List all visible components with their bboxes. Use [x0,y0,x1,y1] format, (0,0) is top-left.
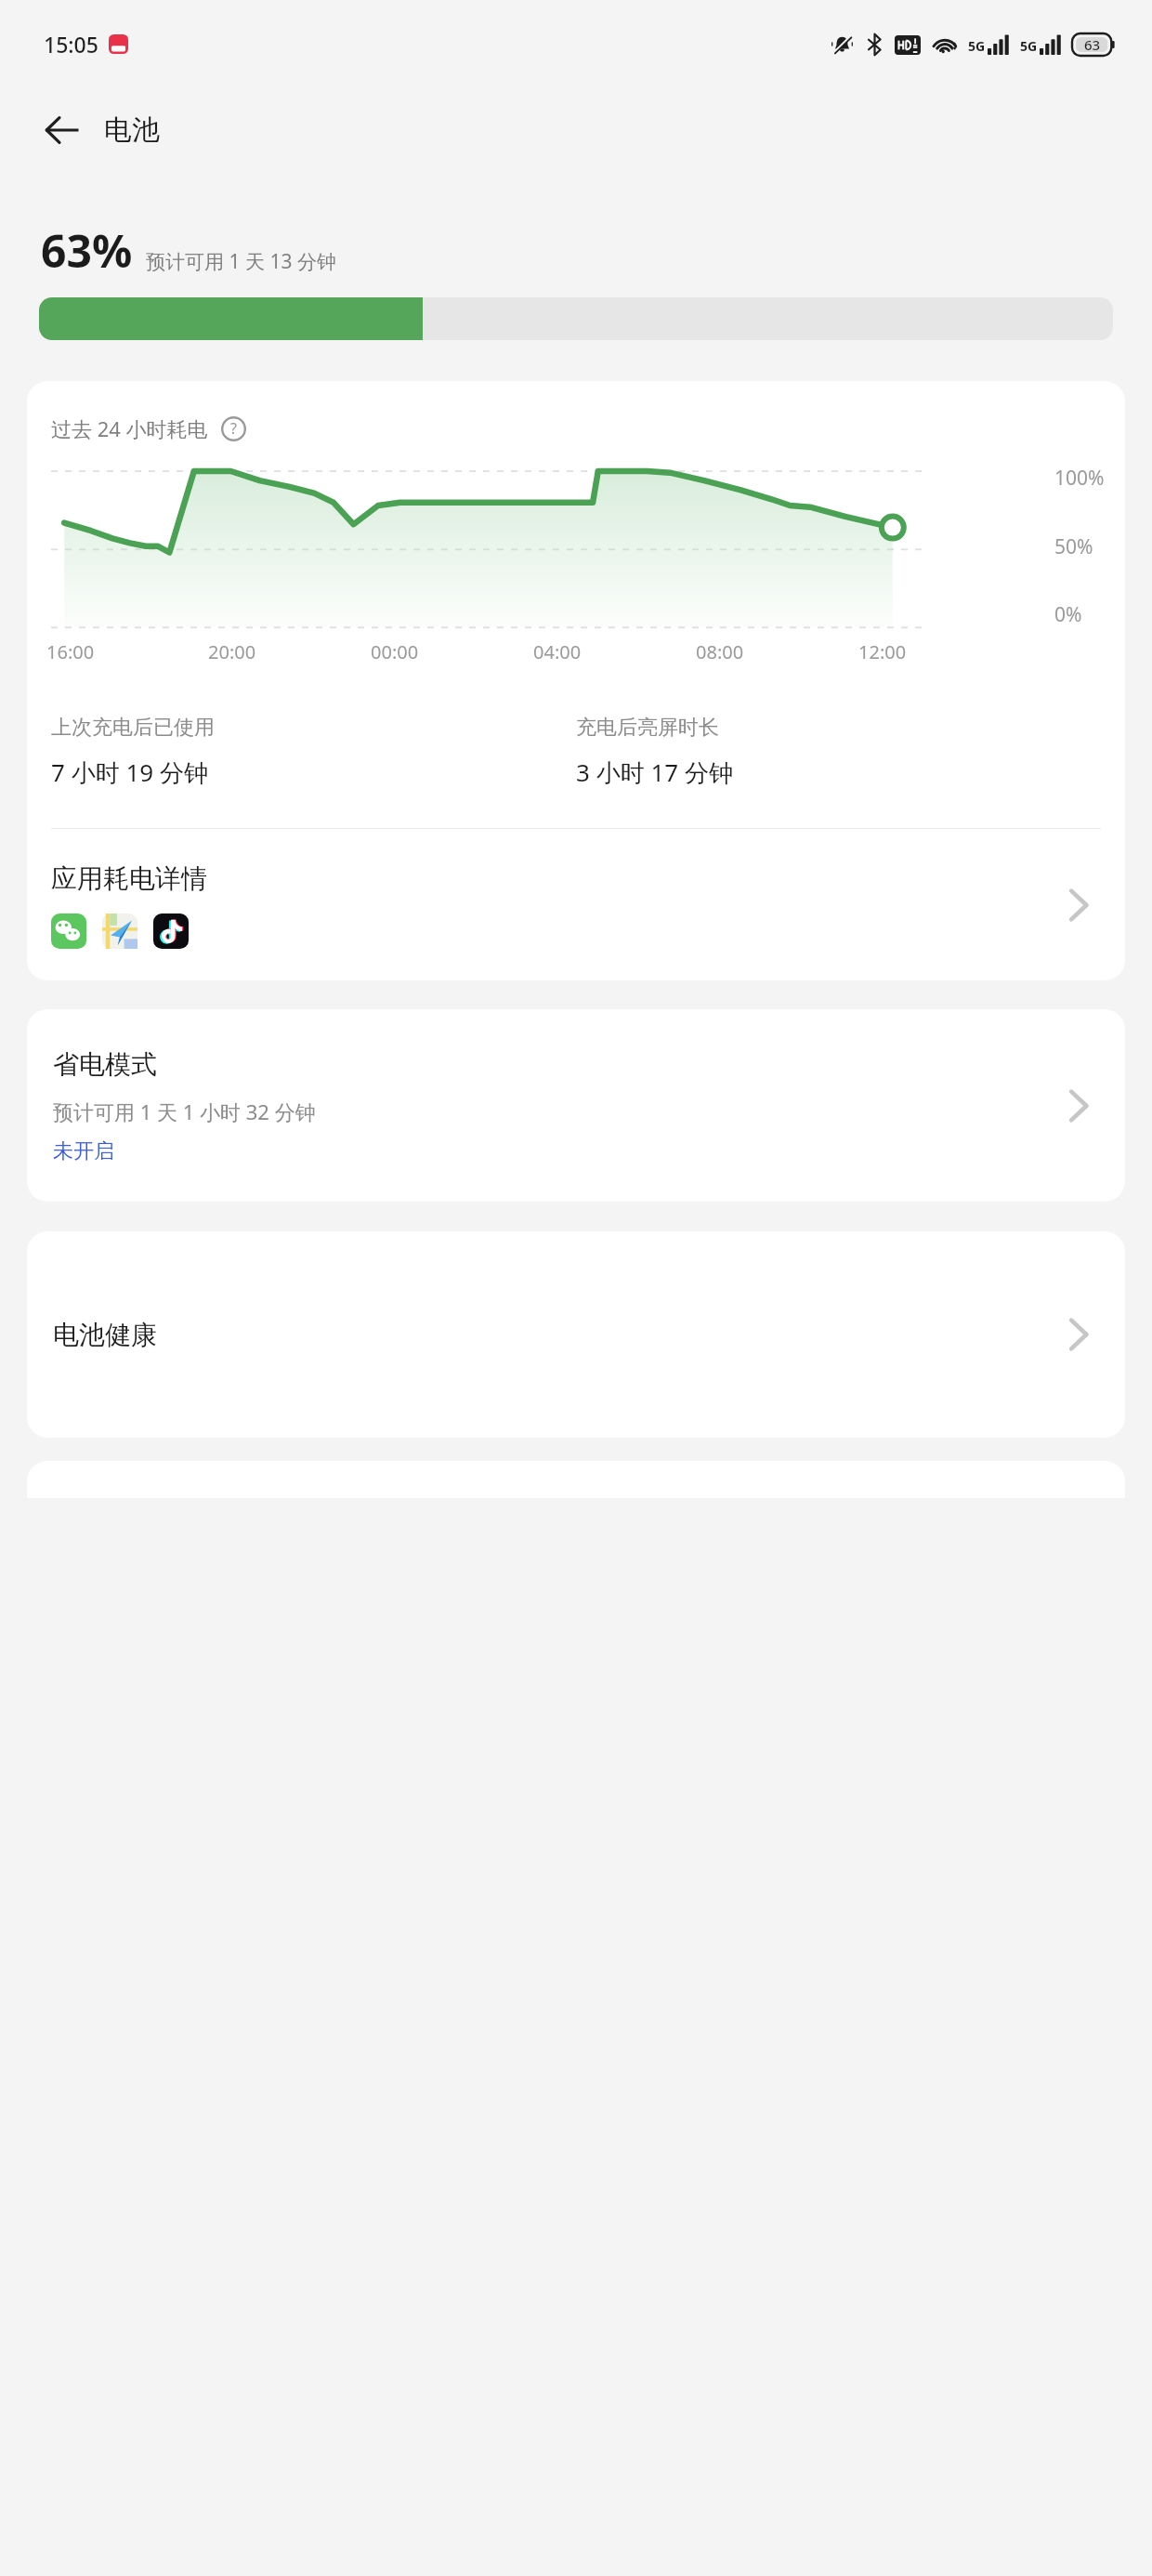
staticText: 预计可用 1 天 13 分钟 [146,248,336,275]
staticText: 5G [968,37,986,55]
staticText: 应用耗电详情 [51,862,207,895]
staticText: 04:00 [533,639,582,664]
staticText: 100% [1054,465,1105,492]
staticText: 0% [1054,601,1082,628]
staticText: 63 [1084,35,1101,54]
button[interactable]: 省电模式 [27,1009,1125,1202]
staticText: 省电模式 [53,1048,157,1081]
button[interactable]: Help [219,414,247,442]
staticText: 5G [1020,37,1038,55]
staticText: 15:05 [44,30,98,59]
staticText: 上次充电后已使用 [51,715,215,741]
staticText: 50% [1054,533,1093,560]
staticText: 预计可用 1 天 1 小时 32 分钟 [53,1097,316,1125]
staticText: 08:00 [696,639,744,664]
staticText: 3 小时 17 分钟 [576,756,733,789]
staticText: 20:00 [208,639,256,664]
button[interactable]: Back [35,103,89,157]
staticText: 00:00 [371,639,419,664]
button[interactable]: 应用耗电详情 [27,829,1125,980]
staticText: 电池健康 [53,1319,1066,1351]
staticText: 过去 24 小时耗电 [51,414,208,442]
staticText: 电池 [104,112,160,148]
staticText: 16:00 [46,639,95,664]
staticText: 12:00 [858,639,907,664]
button[interactable]: 电池健康 [27,1231,1125,1438]
staticText: 充电后亮屏时长 [576,715,719,741]
staticText: ? [230,418,237,439]
staticText: 7 小时 19 分钟 [51,756,208,789]
staticText: 未开启 [53,1138,114,1164]
staticText: 63% [41,220,133,281]
